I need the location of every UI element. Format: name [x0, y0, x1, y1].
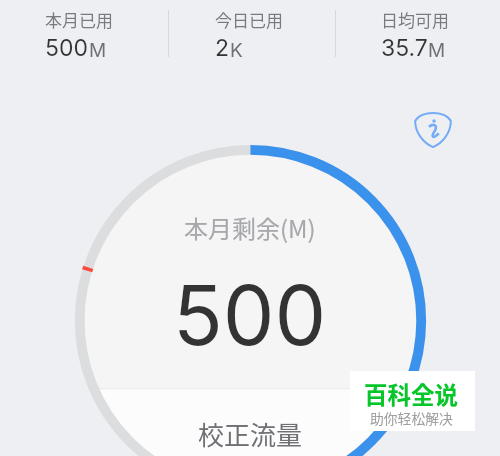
- staticText: 百科全说: [364, 377, 458, 411]
- staticText: 本月已用: [45, 7, 113, 32]
- staticText: 500: [45, 34, 89, 62]
- staticText: K: [230, 39, 243, 62]
- staticText: 日均可用: [381, 7, 449, 32]
- staticText: 本月剩余(M): [184, 210, 316, 245]
- staticText: 2: [215, 34, 230, 62]
- staticText: M: [428, 39, 446, 62]
- staticText: 今日已用: [215, 7, 283, 32]
- staticText: 35.7: [381, 34, 428, 62]
- button[interactable]: 校正流量: [140, 412, 360, 456]
- staticText: 校正流量: [198, 415, 303, 453]
- staticText: M: [89, 39, 107, 62]
- staticText: 助你轻松解决: [370, 408, 453, 428]
- button[interactable]: Info: [412, 107, 454, 149]
- staticText: 500: [173, 266, 327, 365]
